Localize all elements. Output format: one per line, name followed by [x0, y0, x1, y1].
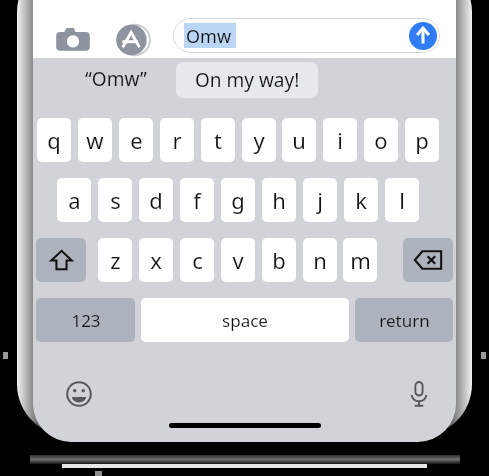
- button[interactable]: space: [141, 298, 349, 342]
- staticText: u: [292, 125, 306, 155]
- button[interactable]: App Store: [113, 20, 153, 60]
- staticText: s: [110, 185, 121, 215]
- staticText: g: [231, 185, 245, 215]
- staticText: c: [192, 245, 203, 275]
- button[interactable]: g: [221, 178, 255, 222]
- button[interactable]: Dictation: [403, 378, 435, 410]
- button[interactable]: d: [139, 178, 173, 222]
- staticText: v: [232, 245, 244, 275]
- staticText: t: [214, 125, 222, 155]
- button[interactable]: k: [344, 178, 378, 222]
- staticText: p: [415, 125, 429, 155]
- button[interactable]: 123: [36, 298, 135, 342]
- button[interactable]: y: [242, 118, 276, 162]
- button[interactable]: f: [180, 178, 214, 222]
- staticText: d: [149, 185, 163, 215]
- staticText: y: [253, 125, 265, 155]
- staticText: a: [68, 185, 81, 215]
- button[interactable]: q: [37, 118, 71, 162]
- staticText: x: [150, 245, 162, 275]
- staticText: r: [172, 125, 182, 155]
- staticText: i: [337, 125, 343, 155]
- button[interactable]: u: [282, 118, 316, 162]
- button[interactable]: return: [355, 298, 453, 342]
- staticText: k: [355, 185, 367, 215]
- staticText: On my way!: [195, 67, 300, 93]
- button[interactable]: z: [98, 238, 132, 282]
- button[interactable]: w: [78, 118, 112, 162]
- button[interactable]: i: [323, 118, 357, 162]
- staticText: f: [193, 185, 201, 215]
- staticText: l: [399, 185, 405, 215]
- staticText: return: [379, 309, 430, 332]
- staticText: m: [350, 245, 371, 275]
- button[interactable]: h: [262, 178, 296, 222]
- button[interactable]: Shift: [36, 238, 86, 282]
- staticText: b: [272, 245, 286, 275]
- button[interactable]: Camera: [53, 22, 93, 58]
- button[interactable]: p: [405, 118, 439, 162]
- staticText: q: [47, 125, 61, 155]
- staticText: space: [222, 309, 268, 332]
- button[interactable]: x: [139, 238, 173, 282]
- button[interactable]: e: [119, 118, 153, 162]
- button[interactable]: l: [385, 178, 419, 222]
- staticText: Omw: [186, 24, 232, 49]
- staticText: “Omw”: [85, 66, 147, 92]
- button[interactable]: Omw: [173, 18, 440, 53]
- button[interactable]: j: [303, 178, 337, 222]
- button[interactable]: Backspace: [403, 238, 453, 282]
- button[interactable]: a: [57, 178, 91, 222]
- button[interactable]: c: [180, 238, 214, 282]
- button[interactable]: r: [160, 118, 194, 162]
- staticText: h: [272, 185, 286, 215]
- staticText: z: [110, 245, 121, 275]
- staticText: e: [130, 125, 143, 155]
- button[interactable]: v: [221, 238, 255, 282]
- staticText: n: [313, 245, 327, 275]
- button[interactable]: b: [262, 238, 296, 282]
- button[interactable]: Emoji: [63, 378, 95, 410]
- button[interactable]: o: [364, 118, 398, 162]
- staticText: w: [86, 125, 104, 155]
- staticText: 123: [71, 309, 101, 332]
- button[interactable]: m: [343, 238, 377, 282]
- staticText: j: [317, 185, 323, 215]
- button[interactable]: On my way!: [176, 62, 318, 98]
- button[interactable]: Send: [409, 22, 437, 50]
- button[interactable]: “Omw”: [69, 62, 163, 96]
- staticText: o: [374, 125, 388, 155]
- button[interactable]: n: [303, 238, 337, 282]
- button[interactable]: s: [98, 178, 132, 222]
- button[interactable]: t: [201, 118, 235, 162]
